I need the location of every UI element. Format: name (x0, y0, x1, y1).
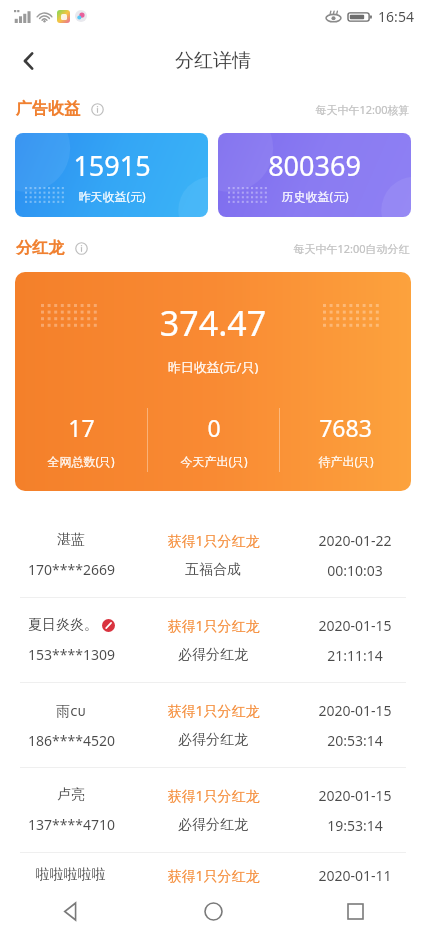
button[interactable]: Home (142, 897, 284, 925)
staticText: 21:11:14 (327, 646, 383, 665)
button[interactable]: Recents (284, 897, 426, 925)
staticText: 昨天收益(元) (78, 188, 146, 204)
staticText: 800369 (268, 147, 361, 184)
staticText: 必得分红龙 (178, 816, 248, 834)
button[interactable]: 0 (148, 404, 279, 476)
staticText: 待产出(只) (318, 453, 374, 469)
button[interactable]: 17 (15, 404, 147, 476)
staticText: 15915 (73, 147, 151, 184)
staticText: 广告收益 (16, 99, 80, 119)
staticText: 获得1只分红龙 (167, 786, 260, 805)
button[interactable]: 啦啦啦啦啦 (0, 853, 426, 897)
staticText: 2020-01-15 (318, 786, 392, 805)
staticText: 137****4710 (28, 815, 115, 834)
staticText: 186****4520 (28, 731, 115, 750)
staticText: 2020-01-15 (318, 616, 392, 635)
staticText: 153****1309 (28, 645, 115, 664)
staticText: 卢亮 (57, 786, 85, 804)
button[interactable]: 15915 (15, 133, 208, 217)
staticText: 每天中午12:00自动分红 (293, 241, 410, 256)
staticText: 分红龙 (16, 238, 64, 258)
staticText: 0 (207, 412, 221, 443)
button[interactable]: 7683 (280, 404, 411, 476)
staticText: 今天产出(只) (180, 453, 248, 469)
staticText: 雨ᴄᴜ (56, 701, 86, 720)
staticText: 2020-01-22 (318, 531, 392, 550)
staticText: 全网总数(只) (47, 453, 115, 469)
staticText: 获得1只分红龙 (167, 866, 260, 885)
button[interactable]: 夏日炎炎。 (0, 598, 426, 683)
staticText: 2020-01-11 (318, 866, 392, 885)
staticText: 获得1只分红龙 (167, 616, 260, 635)
staticText: 2020-01-15 (318, 701, 392, 720)
staticText: 历史收益(元) (281, 188, 349, 204)
staticText: 啦啦啦啦啦 (36, 866, 106, 884)
staticText: 7683 (319, 412, 372, 443)
button[interactable]: 800369 (218, 133, 411, 217)
staticText: 五福合成 (185, 561, 241, 579)
button[interactable]: 雨ᴄᴜ (0, 683, 426, 768)
staticText: 20:53:14 (327, 731, 383, 750)
button[interactable]: 湛蓝 (0, 513, 426, 598)
staticText: 17 (68, 412, 95, 443)
staticText: 19:53:14 (327, 816, 383, 835)
button[interactable]: Back (0, 897, 142, 925)
button[interactable]: Back (6, 38, 52, 84)
staticText: 每天中午12:00核算 (315, 102, 410, 117)
staticText: 374.47 (15, 300, 411, 346)
staticText: 昨日收益(元/只) (15, 358, 411, 376)
button[interactable]: Info (86, 98, 108, 120)
button[interactable]: 374.47 (15, 272, 411, 491)
button[interactable]: Info (70, 237, 92, 259)
staticText: 夏日炎炎。 (28, 616, 98, 634)
staticText: 湛蓝 (57, 531, 85, 549)
staticText: 必得分红龙 (178, 731, 248, 749)
staticText: 必得分红龙 (178, 646, 248, 664)
staticText: 获得1只分红龙 (167, 701, 260, 720)
staticText: 00:10:03 (327, 561, 383, 580)
staticText: 获得1只分红龙 (167, 531, 260, 550)
staticText: 170****2669 (28, 560, 115, 579)
button[interactable]: 卢亮 (0, 768, 426, 853)
staticText: 分红详情 (175, 49, 251, 73)
staticText: 16:54 (378, 7, 414, 26)
